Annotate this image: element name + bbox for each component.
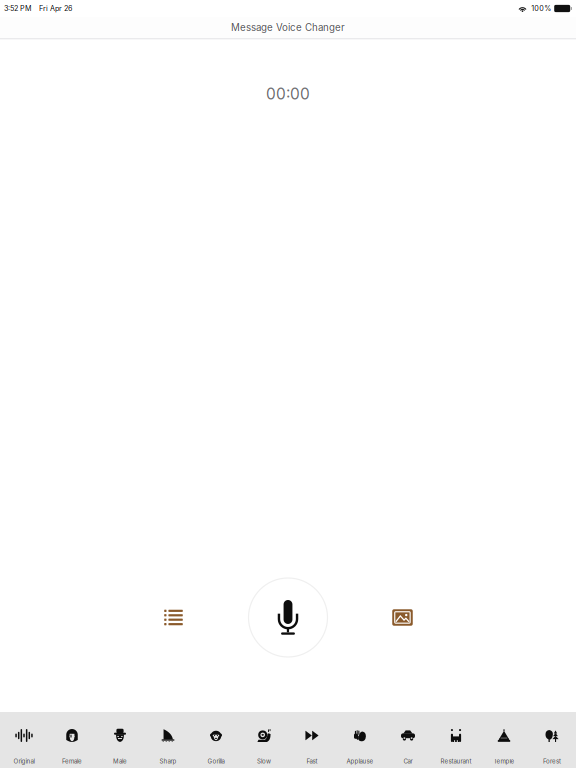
- staticText: Female: [62, 758, 82, 765]
- staticText: Slow: [257, 758, 271, 765]
- staticText: 100%: [531, 4, 551, 13]
- button[interactable]: Record: [248, 578, 327, 657]
- staticText: 3:52 PM: [4, 4, 32, 13]
- staticText: Forest: [543, 758, 561, 765]
- button[interactable]: Male: [96, 712, 144, 768]
- staticText: Applause: [346, 758, 373, 765]
- button[interactable]: Slow: [240, 712, 288, 768]
- staticText: Gorilla: [207, 758, 224, 765]
- button[interactable]: Fast: [288, 712, 336, 768]
- button[interactable]: Applause: [336, 712, 384, 768]
- staticText: Car: [403, 758, 412, 765]
- staticText: Fri Apr 26: [39, 4, 72, 13]
- button[interactable]: Sharp: [144, 712, 192, 768]
- staticText: Sharp: [159, 758, 176, 765]
- button[interactable]: Temple: [480, 712, 528, 768]
- staticText: Original: [13, 758, 34, 765]
- button[interactable]: Forest: [528, 712, 576, 768]
- button[interactable]: Gorilla: [192, 712, 240, 768]
- staticText: Fast: [306, 758, 317, 765]
- button[interactable]: Female: [48, 712, 96, 768]
- button[interactable]: Restaurant: [432, 712, 480, 768]
- staticText: 00:00: [266, 85, 310, 103]
- staticText: Restaurant: [440, 758, 471, 765]
- button[interactable]: Recordings: [151, 595, 195, 639]
- staticText: Message Voice Changer: [231, 22, 345, 33]
- staticText: Male: [113, 758, 127, 765]
- button[interactable]: Original: [0, 712, 48, 768]
- staticText: Temple: [493, 758, 514, 765]
- button[interactable]: Photos: [380, 595, 424, 639]
- button[interactable]: Car: [384, 712, 432, 768]
